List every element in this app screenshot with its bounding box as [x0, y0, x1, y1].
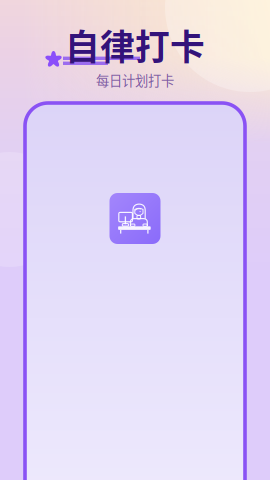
button[interactable]: 自律打卡 App — [109, 193, 160, 244]
staticText: 自律打卡 — [65, 20, 205, 70]
staticText: 每日计划打卡 — [96, 70, 174, 90]
